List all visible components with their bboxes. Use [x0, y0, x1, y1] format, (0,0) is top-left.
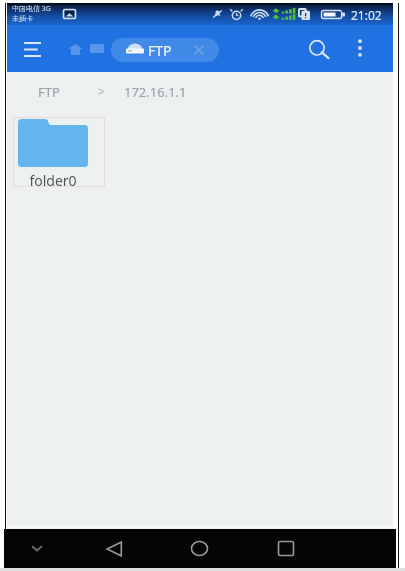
button[interactable]: Navigation menu	[19, 36, 46, 62]
staticText: folder0	[29, 171, 77, 190]
button[interactable]: Recent apps	[271, 529, 301, 568]
button[interactable]: FTP	[36, 83, 62, 101]
button[interactable]: Search	[303, 35, 336, 65]
button[interactable]: More options	[347, 35, 373, 61]
button[interactable]: FTP	[111, 38, 219, 62]
button[interactable]: Close tab	[192, 41, 205, 59]
staticText: 未插卡	[12, 14, 33, 23]
button[interactable]: Back	[99, 529, 129, 568]
button[interactable]: folder0	[13, 117, 105, 187]
button[interactable]: Tabs	[87, 41, 106, 55]
button[interactable]: Home	[66, 41, 85, 57]
staticText: 21:02	[351, 7, 382, 23]
button[interactable]: 172.16.1.1	[122, 83, 189, 101]
staticText: 中国电信 3G	[12, 4, 51, 14]
staticText: >	[98, 83, 105, 99]
button[interactable]: Home	[185, 529, 214, 568]
button[interactable]: Hide keyboard	[24, 529, 49, 568]
staticText: FTP	[148, 41, 172, 60]
